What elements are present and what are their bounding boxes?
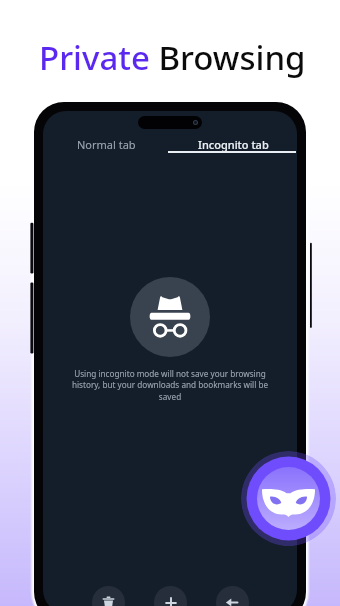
button[interactable]: Back bbox=[216, 586, 249, 606]
staticText: Using incognito mode will not save your … bbox=[67, 368, 273, 403]
button[interactable]: Normal tab bbox=[43, 133, 170, 155]
staticText: Normal tab bbox=[77, 137, 136, 152]
button[interactable]: Incognito tab bbox=[170, 133, 297, 155]
button[interactable]: Private mode bbox=[241, 451, 336, 546]
button[interactable]: New tab bbox=[154, 586, 187, 606]
staticText: Incognito tab bbox=[198, 137, 269, 152]
staticText: Private Browsing bbox=[39, 35, 306, 80]
button[interactable]: Close all tabs bbox=[92, 586, 125, 606]
